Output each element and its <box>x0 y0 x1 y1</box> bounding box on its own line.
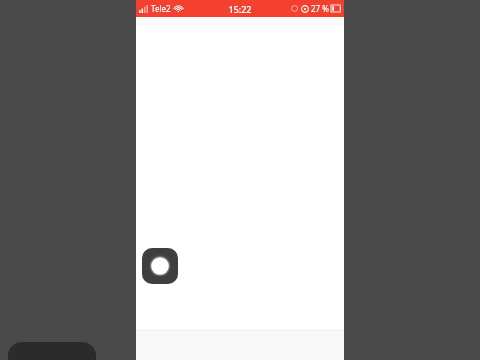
button[interactable]: Record <box>142 248 178 284</box>
staticText: Tele2 <box>151 3 171 14</box>
staticText: 15:22 <box>228 3 252 15</box>
staticText: 27 % <box>311 3 329 14</box>
